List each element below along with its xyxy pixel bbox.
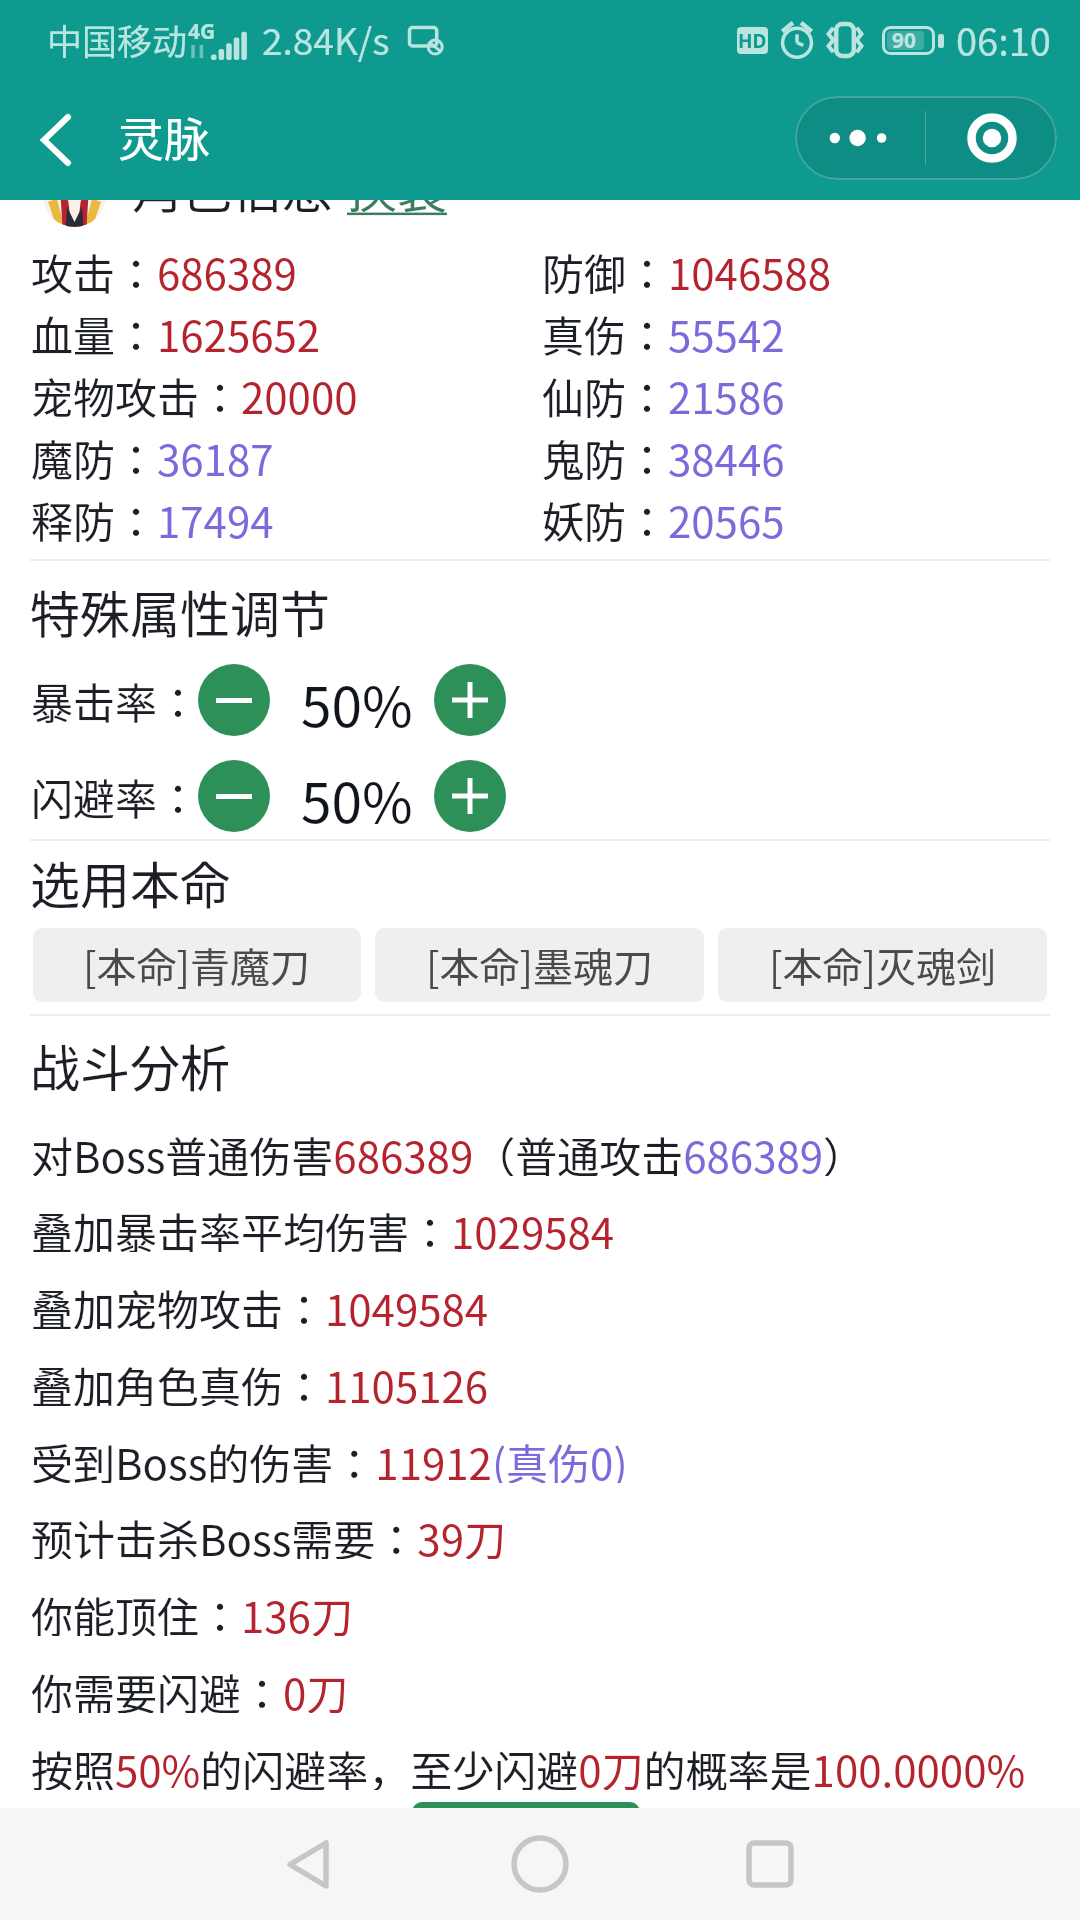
staticText: 鬼防：38446 <box>542 427 785 481</box>
staticText: 50% <box>301 759 413 831</box>
button[interactable] <box>412 1802 640 1822</box>
staticText: 战斗分析 <box>30 1029 230 1095</box>
staticText: 角色信息 <box>132 150 332 222</box>
staticText: HD <box>738 28 767 54</box>
staticText: 中国移动 <box>47 14 188 65</box>
staticText: 血量：1625652 <box>31 303 321 357</box>
staticText: 释防：17494 <box>31 489 274 543</box>
staticText: 叠加宠物攻击：1049584 <box>31 1277 489 1329</box>
staticText: [本命]青魔刀 <box>83 936 311 994</box>
staticText: 对Boss普通伤害686389（普通攻击686389） <box>31 1124 866 1176</box>
staticText: 90 <box>892 26 917 55</box>
staticText: 你需要闪避：0刀 <box>31 1661 349 1713</box>
staticText: 魔防：36187 <box>31 427 274 481</box>
staticText: 选用本命 <box>30 846 230 912</box>
staticText: 闪避率： <box>31 766 200 827</box>
staticText: 你能顶住：136刀 <box>31 1584 353 1636</box>
button[interactable]: More options <box>795 96 925 180</box>
staticText: [本命]墨魂刀 <box>426 936 654 994</box>
button[interactable]: Increase <box>434 760 506 832</box>
button[interactable]: [本命]墨魂刀 <box>375 928 704 1002</box>
staticText: 06:10 <box>956 12 1051 67</box>
button[interactable]: Increase <box>434 664 506 736</box>
button[interactable]: Decrease <box>198 760 270 832</box>
button[interactable]: Recent apps <box>730 1808 810 1920</box>
button[interactable]: Back <box>268 1808 348 1920</box>
staticText: 攻击：686389 <box>31 241 297 295</box>
staticText: 防御：1046588 <box>542 241 832 295</box>
button[interactable]: [本命]青魔刀 <box>33 928 361 1002</box>
button[interactable]: Back <box>16 100 96 180</box>
staticText: 妖防：20565 <box>542 489 785 543</box>
staticText: 宠物攻击：20000 <box>31 365 358 419</box>
button[interactable]: Close mini program <box>926 96 1057 180</box>
staticText: 预计击杀Boss需要：39刀 <box>31 1507 506 1559</box>
button[interactable]: Decrease <box>198 664 270 736</box>
staticText: 灵脉 <box>118 103 210 170</box>
staticText: 暴击率： <box>31 670 200 731</box>
button[interactable]: 角色信息 <box>0 130 1080 230</box>
staticText: 2.84K/s <box>262 12 390 66</box>
staticText: 叠加暴击率平均伤害：1029584 <box>31 1200 615 1252</box>
staticText: 特殊属性调节 <box>30 575 330 641</box>
staticText: 按照50%的闪避率，至少闪避0刀的概率是100.0000% <box>31 1738 1026 1790</box>
staticText: 换装 <box>347 150 447 222</box>
staticText: 真伤：55542 <box>542 303 785 357</box>
staticText: 叠加角色真伤：1105126 <box>31 1354 489 1406</box>
button[interactable]: Home <box>500 1808 580 1920</box>
staticText: 50% <box>301 663 413 735</box>
staticText: 受到Boss的伤害：11912(真伤0) <box>31 1431 628 1483</box>
staticText: [本命]灭魂剑 <box>769 936 997 994</box>
staticText: 4G <box>188 17 216 46</box>
staticText: 仙防：21586 <box>542 365 785 419</box>
button[interactable]: [本命]灭魂剑 <box>718 928 1047 1002</box>
